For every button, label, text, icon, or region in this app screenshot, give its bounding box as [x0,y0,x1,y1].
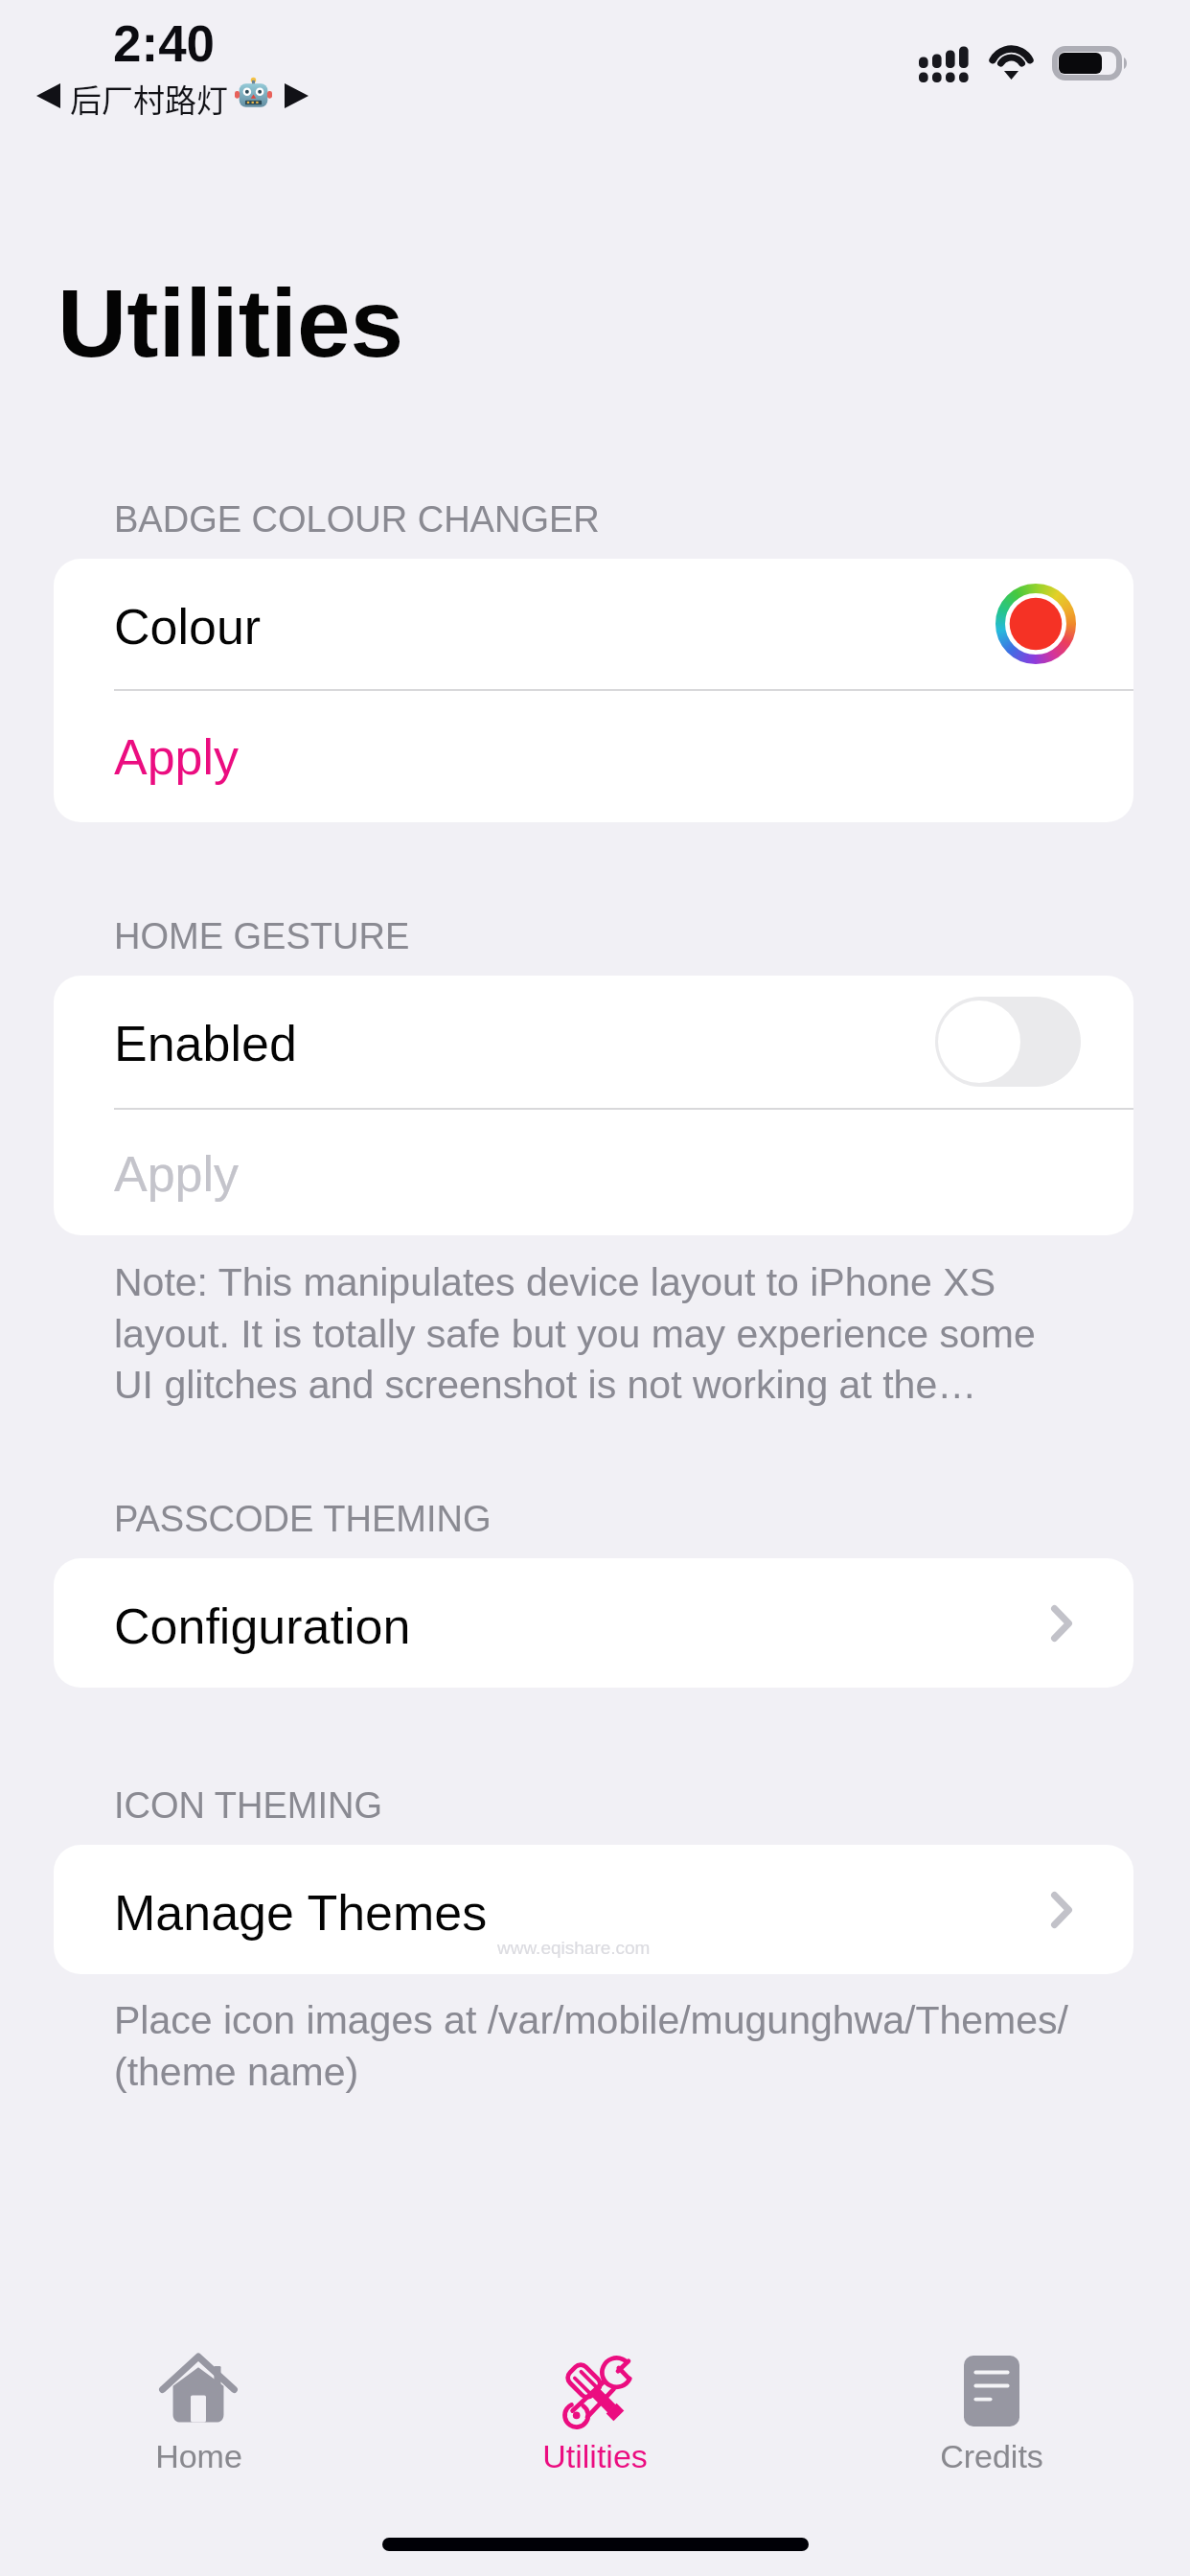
button[interactable] [35,2329,361,2501]
button[interactable] [432,2329,758,2501]
staticText: Configuration [114,1598,411,1654]
staticText: HOME GESTURE [114,916,410,956]
button[interactable] [54,1845,1133,1974]
other: Utilities [557,2354,634,2430]
staticText: Enabled [114,1016,297,1071]
other: Open [1051,1892,1072,1928]
staticText: Utilities [542,2438,648,2474]
staticText: 后厂村路灯 [70,76,228,122]
button[interactable] [54,976,1133,1108]
staticText: Apply [114,1146,240,1202]
other: Credits [964,2356,1019,2426]
button[interactable] [54,1108,1133,1235]
staticText: Note: This manipulates device layout to … [114,1260,1168,1407]
staticText: Home [155,2438,242,2474]
staticText: Manage Themes [114,1885,488,1941]
staticText: 2:40 [113,15,216,72]
button[interactable] [54,1558,1133,1688]
other: Next [285,83,309,108]
other: Open [1051,1605,1072,1642]
other: Home [158,2353,239,2424]
other: Pick badge colour [995,584,1076,664]
staticText: ICON THEMING [114,1785,383,1826]
staticText: Colour [114,599,262,655]
button[interactable] [54,559,1133,689]
staticText: PASSCODE THEMING [114,1499,492,1539]
staticText: BADGE COLOUR CHANGER [114,499,600,540]
button[interactable]: Enable home gesture [935,997,1081,1087]
staticText: Credits [940,2438,1043,2474]
button[interactable] [54,689,1133,822]
staticText: Utilities [57,269,404,377]
staticText: www.eqishare.com [497,1938,651,1958]
staticText: Apply [114,729,240,785]
other: Previous [36,83,60,108]
staticText: Place icon images at /var/mobile/mugungh… [114,1998,1168,2094]
button[interactable] [829,2329,1155,2501]
